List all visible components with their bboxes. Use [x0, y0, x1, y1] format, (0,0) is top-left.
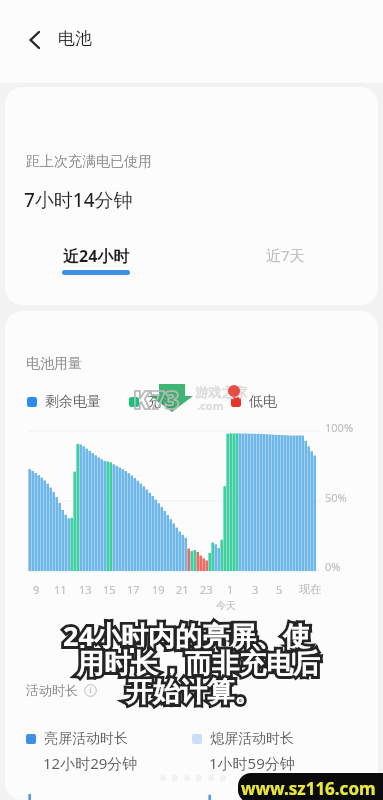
staticText: 现在	[299, 582, 321, 596]
staticText: 今天	[216, 599, 236, 612]
staticText: 9	[33, 582, 40, 597]
staticText: 7小时14分钟	[24, 187, 133, 213]
staticText: 游戏之家	[195, 384, 247, 400]
staticText: 13	[79, 582, 92, 597]
staticText: 充电	[147, 393, 175, 411]
staticText: 熄屏活动时长	[210, 730, 294, 748]
staticText: 近24小时	[63, 245, 130, 267]
staticText: www.sz116.com	[241, 777, 376, 800]
staticText: 开始计算。	[126, 675, 261, 709]
staticText: 近7天	[266, 245, 305, 265]
staticText: 50%	[325, 490, 347, 505]
staticText: 17	[127, 582, 140, 597]
staticText: 3	[252, 582, 259, 597]
staticText: 24小时内的亮屏、使	[63, 617, 310, 654]
staticText: 电池用量	[26, 355, 82, 373]
staticText: 电池	[58, 28, 92, 49]
button[interactable]: Back	[13, 18, 57, 62]
staticText: 开始计算。	[126, 675, 261, 709]
staticText: 亮屏活动时长	[44, 730, 128, 748]
staticText: 21	[176, 582, 189, 597]
staticText: 1	[227, 582, 234, 597]
staticText: 23	[200, 582, 213, 597]
staticText: 用时长，而非充电后	[77, 647, 320, 681]
staticText: 距上次充满电已使用	[26, 153, 152, 171]
staticText: 0%	[325, 559, 341, 574]
staticText: 低电	[249, 393, 277, 411]
staticText: 15	[103, 582, 116, 597]
staticText: 11	[54, 582, 67, 597]
staticText: 剩余电量	[45, 393, 101, 411]
staticText: 1小时59分钟	[209, 753, 295, 773]
staticText: 100%	[325, 420, 354, 435]
staticText: K73	[133, 382, 180, 416]
staticText: .com	[197, 398, 224, 413]
button[interactable]: 近24小时	[62, 245, 130, 275]
staticText: 24小时内的亮屏、使	[63, 617, 310, 654]
staticText: 用时长，而非充电后	[77, 647, 320, 681]
button[interactable]: 近7天	[266, 245, 305, 265]
staticText: 5	[276, 582, 283, 597]
staticText: 活动时长	[26, 682, 78, 698]
button[interactable]: More info	[84, 684, 97, 697]
staticText: 12小时29分钟	[43, 753, 138, 773]
staticText: 19	[152, 582, 165, 597]
